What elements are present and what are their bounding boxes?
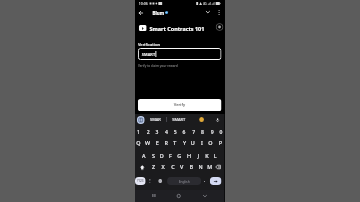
staticText: J bbox=[197, 152, 199, 160]
button[interactable]: 1 bbox=[135, 127, 143, 135]
button[interactable]: 8 bbox=[198, 127, 207, 135]
staticText: E bbox=[155, 139, 159, 147]
staticText: 6 bbox=[183, 128, 185, 135]
staticText: Verification bbox=[138, 42, 160, 48]
staticText: SMART bbox=[142, 52, 155, 57]
button[interactable]: H bbox=[184, 152, 193, 160]
staticText: A bbox=[142, 152, 146, 160]
staticText: SMAR bbox=[150, 117, 161, 123]
button[interactable]: Verify bbox=[138, 99, 221, 111]
button[interactable]: S bbox=[149, 152, 157, 160]
staticText: 9 bbox=[211, 128, 214, 135]
staticText: Z bbox=[151, 163, 155, 171]
button[interactable]: Recents bbox=[150, 191, 158, 200]
button[interactable]: SMART bbox=[169, 116, 188, 124]
button[interactable]: Back bbox=[136, 8, 145, 17]
button[interactable]: N bbox=[195, 163, 205, 171]
button[interactable]: SMART bbox=[138, 48, 221, 60]
button[interactable]: X bbox=[158, 163, 168, 171]
button[interactable]: 7 bbox=[189, 127, 198, 135]
staticText: Q bbox=[136, 139, 141, 147]
button[interactable]: E bbox=[152, 139, 161, 147]
staticText: 7 bbox=[192, 128, 195, 135]
staticText: O bbox=[208, 139, 213, 147]
staticText: S bbox=[151, 152, 155, 160]
button[interactable]: Translate bbox=[157, 177, 163, 185]
staticText: Verify to claim your reward bbox=[138, 64, 178, 68]
button[interactable]: G bbox=[175, 152, 183, 160]
button[interactable]: U bbox=[188, 139, 197, 147]
staticText: L bbox=[214, 152, 217, 160]
staticText: 8 bbox=[201, 128, 204, 135]
staticText: B bbox=[189, 163, 193, 171]
button[interactable]: O bbox=[206, 139, 215, 147]
staticText: Blum bbox=[152, 10, 164, 16]
button[interactable]: R bbox=[161, 139, 170, 147]
button[interactable]: English bbox=[167, 177, 201, 185]
staticText: T bbox=[173, 139, 177, 147]
button[interactable]: Options bbox=[216, 23, 223, 31]
button[interactable]: Q bbox=[135, 139, 143, 147]
staticText: G bbox=[177, 152, 182, 160]
staticText: M bbox=[207, 163, 213, 171]
button[interactable]: Back bbox=[200, 191, 209, 200]
button[interactable]: Z bbox=[149, 163, 158, 171]
staticText: 3 bbox=[155, 128, 158, 135]
staticText: Smart Contracts 101 bbox=[150, 25, 205, 33]
button[interactable]: I bbox=[197, 139, 206, 147]
button[interactable]: L bbox=[211, 152, 219, 160]
button[interactable]: 4 bbox=[162, 127, 171, 135]
staticText: H bbox=[186, 152, 191, 160]
button[interactable]: Backspace bbox=[213, 163, 222, 171]
button[interactable]: P bbox=[216, 139, 224, 147]
staticText: C bbox=[171, 163, 175, 171]
staticText: N bbox=[198, 163, 203, 171]
button[interactable]: Expand bbox=[204, 8, 212, 16]
button[interactable]: K bbox=[202, 152, 211, 160]
button[interactable]: Comma bbox=[147, 177, 152, 185]
staticText: K bbox=[205, 152, 209, 160]
staticText: W bbox=[145, 139, 150, 147]
button[interactable]: 9 bbox=[208, 127, 217, 135]
staticText: 4G bbox=[203, 2, 207, 6]
staticText: I bbox=[201, 139, 203, 147]
button[interactable]: J bbox=[193, 152, 202, 160]
staticText: R bbox=[164, 139, 168, 147]
button[interactable]: V bbox=[177, 163, 186, 171]
staticText: 1 bbox=[137, 128, 140, 135]
staticText: U bbox=[190, 139, 195, 147]
staticText: P bbox=[219, 139, 222, 147]
button[interactable]: Emoji bbox=[199, 117, 204, 122]
staticText: Y bbox=[183, 139, 186, 147]
button[interactable]: 0 bbox=[217, 127, 225, 135]
button[interactable]: T bbox=[170, 139, 179, 147]
button[interactable]: 2 bbox=[144, 127, 152, 135]
button[interactable]: Home bbox=[174, 191, 183, 200]
button[interactable]: Period bbox=[202, 177, 206, 185]
button[interactable]: Shift bbox=[137, 163, 147, 171]
staticText: 0 bbox=[219, 128, 222, 135]
button[interactable]: W bbox=[143, 139, 151, 147]
staticText: 5 bbox=[174, 128, 177, 135]
staticText: V bbox=[180, 163, 184, 171]
button[interactable]: 3 bbox=[152, 127, 161, 135]
button[interactable]: ?123 bbox=[135, 177, 146, 185]
button[interactable]: C bbox=[168, 163, 178, 171]
button[interactable]: F bbox=[166, 152, 175, 160]
staticText: F bbox=[169, 152, 172, 160]
button[interactable]: 6 bbox=[180, 127, 188, 135]
staticText: 4 bbox=[165, 128, 168, 135]
button[interactable]: B bbox=[186, 163, 196, 171]
staticText: English bbox=[179, 179, 190, 183]
staticText: 10:06 bbox=[139, 1, 149, 6]
button[interactable]: Keyboard settings bbox=[137, 116, 145, 124]
button[interactable]: A bbox=[139, 152, 148, 160]
button[interactable]: Y bbox=[180, 139, 188, 147]
button[interactable]: D bbox=[157, 152, 166, 160]
button[interactable]: Voice input bbox=[214, 116, 220, 123]
button[interactable]: M bbox=[205, 163, 215, 171]
button[interactable]: 5 bbox=[171, 127, 180, 135]
button[interactable]: SMAR bbox=[147, 116, 164, 124]
button[interactable]: More options bbox=[215, 8, 222, 16]
button[interactable]: Enter bbox=[210, 177, 221, 185]
